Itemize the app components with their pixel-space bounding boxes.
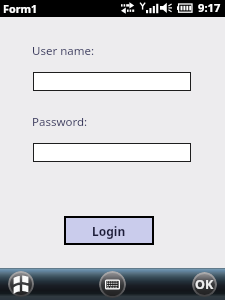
staticText: Form1	[3, 1, 38, 16]
staticText: Password:	[32, 114, 88, 130]
button[interactable]: OK	[192, 272, 217, 297]
staticText: Login	[92, 223, 126, 239]
button[interactable]: Login	[66, 218, 152, 243]
staticText: User name:	[32, 43, 95, 59]
button[interactable]: Keyboard	[99, 271, 126, 298]
button[interactable]: Start	[8, 271, 34, 297]
staticText: OK	[195, 276, 214, 293]
staticText: 9:17	[198, 0, 221, 15]
